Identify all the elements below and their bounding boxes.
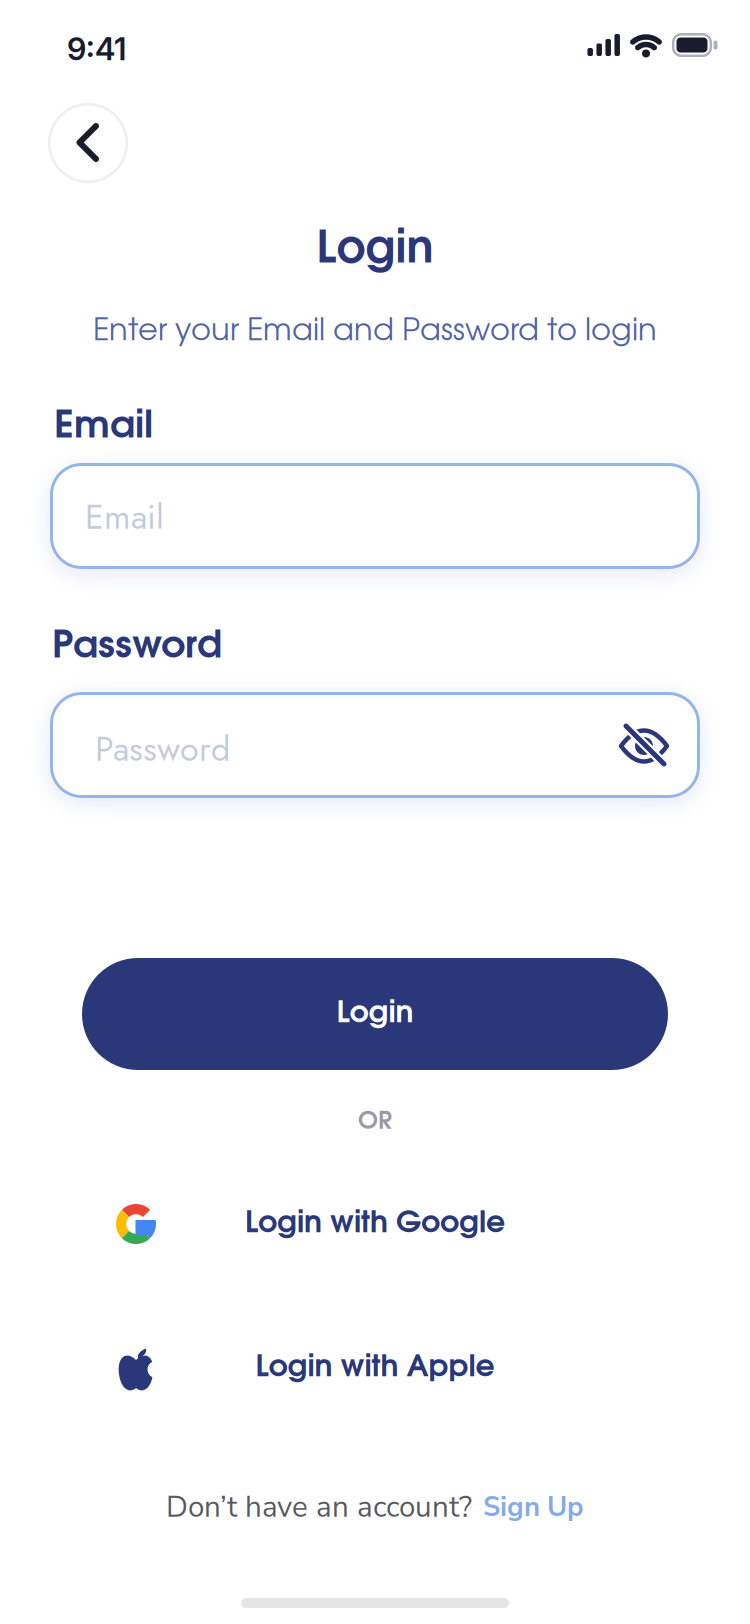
staticText: Password [95, 724, 230, 773]
button[interactable]: Login with Google [50, 1179, 700, 1269]
staticText: OR [358, 1111, 392, 1133]
staticText: Email [85, 492, 164, 541]
button[interactable]: Email [50, 463, 700, 569]
staticText: Sign Up [483, 1488, 584, 1526]
button[interactable]: Login with Apple [50, 1323, 700, 1413]
staticText: Login with Apple [255, 1354, 494, 1382]
button[interactable]: Password [50, 692, 700, 798]
staticText: Login [336, 1000, 413, 1028]
staticText: Password [52, 629, 222, 664]
button[interactable]: Sign Up [483, 1488, 584, 1526]
button[interactable]: Back [48, 103, 128, 183]
staticText: Don’t have an account? [166, 1487, 472, 1527]
staticText: Login with Google [245, 1210, 505, 1238]
staticText: Email [54, 409, 153, 444]
button[interactable]: Login [82, 958, 668, 1070]
staticText: Login [316, 229, 433, 271]
staticText: Enter your Email and Password to login [93, 318, 657, 346]
button[interactable]: Show password [614, 716, 674, 776]
staticText: 9:41 [67, 30, 126, 68]
